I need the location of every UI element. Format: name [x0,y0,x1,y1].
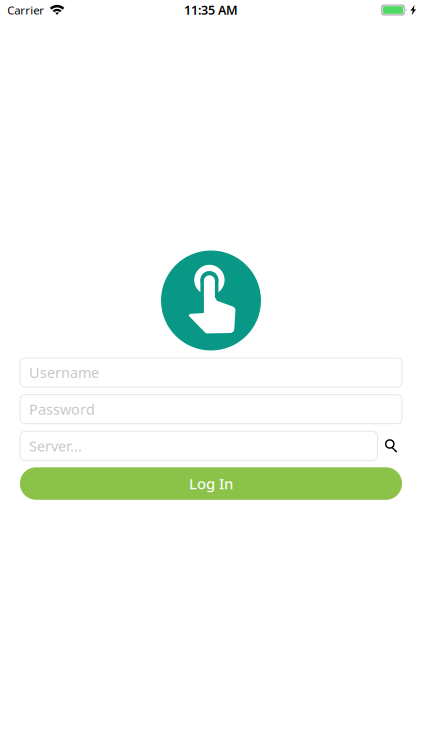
button[interactable]: Search servers [377,431,402,460]
staticText: 11:35 AM [184,1,238,19]
staticText: Server... [29,436,82,456]
staticText: Log In [189,473,233,494]
staticText: Username [29,363,99,382]
button[interactable]: Log In [20,467,402,500]
staticText: Carrier [7,2,44,18]
staticText: Password [29,399,95,419]
